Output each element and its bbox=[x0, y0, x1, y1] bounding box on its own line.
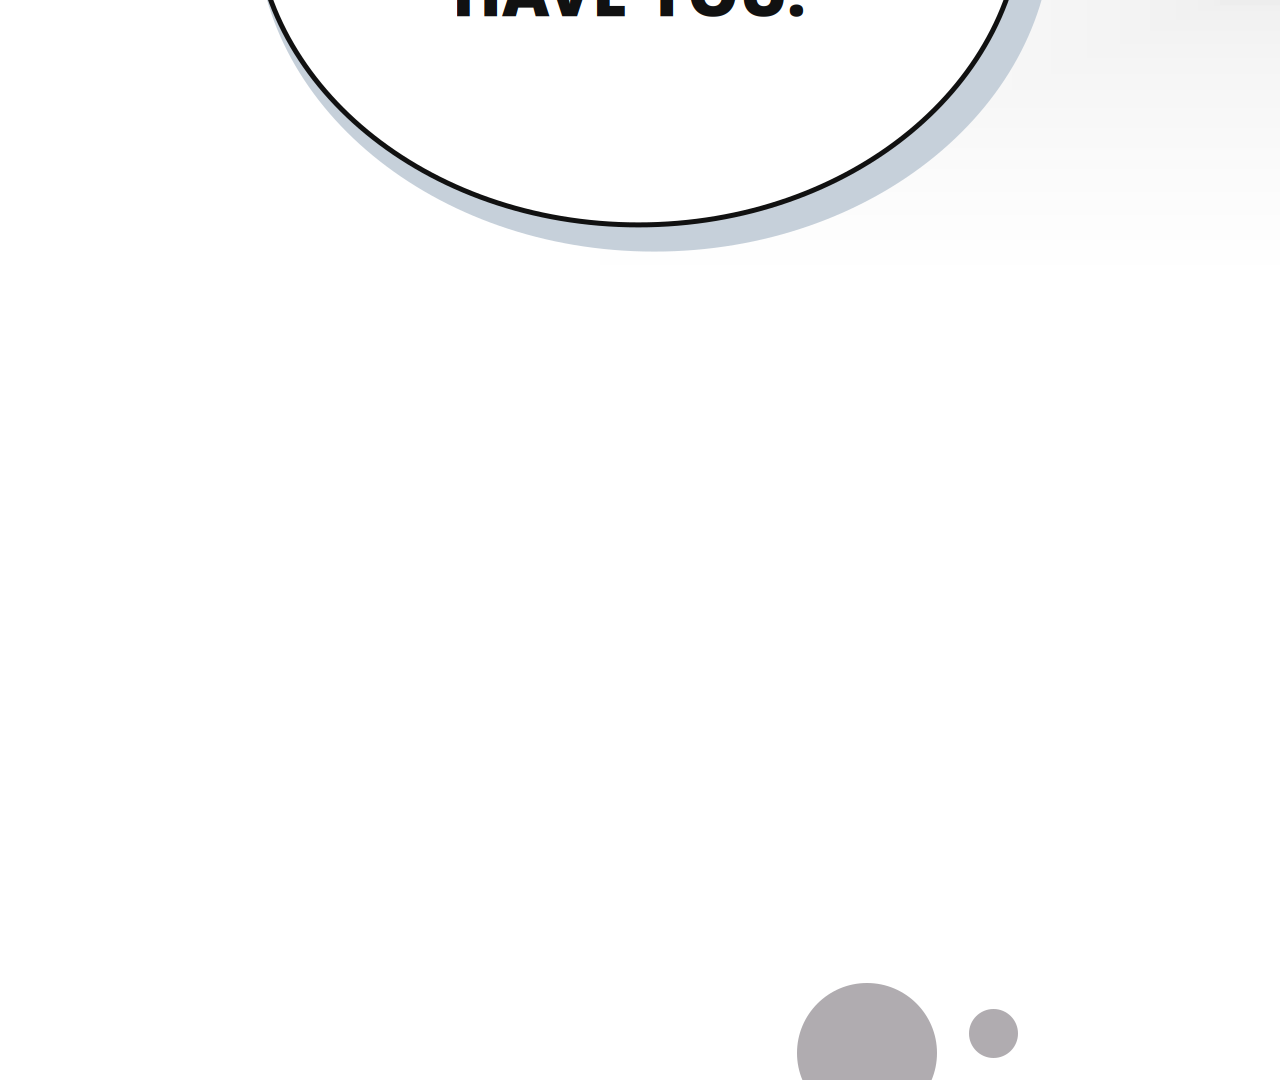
staticText: HAVE YOU. bbox=[452, 0, 806, 34]
